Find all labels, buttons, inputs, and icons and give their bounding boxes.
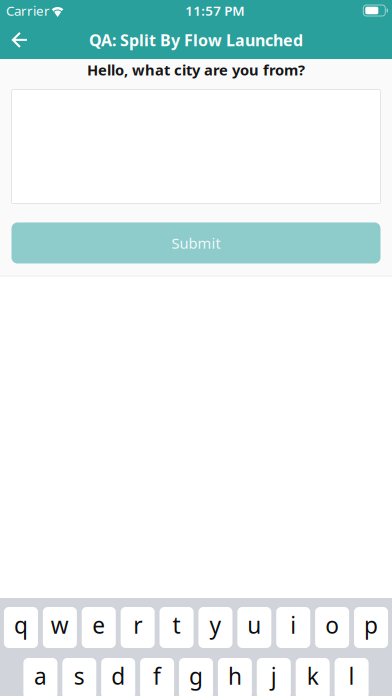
staticText: a bbox=[34, 661, 47, 691]
button[interactable]: Back bbox=[0, 21, 38, 59]
button[interactable]: w bbox=[43, 607, 77, 648]
staticText: w bbox=[51, 610, 69, 640]
staticText: j bbox=[271, 661, 277, 691]
staticText: q bbox=[14, 610, 28, 640]
button[interactable]: k bbox=[296, 658, 330, 696]
staticText: y bbox=[209, 610, 221, 640]
staticText: QA: Split By Flow Launched bbox=[89, 29, 303, 51]
button[interactable]: j bbox=[257, 658, 291, 696]
staticText: k bbox=[307, 661, 319, 691]
button[interactable]: f bbox=[140, 658, 174, 696]
button[interactable]: d bbox=[101, 658, 135, 696]
staticText: d bbox=[111, 661, 125, 691]
button[interactable]: h bbox=[218, 658, 252, 696]
button[interactable]: g bbox=[179, 658, 213, 696]
staticText: f bbox=[153, 661, 161, 691]
staticText: Hello, what city are you from? bbox=[87, 60, 305, 79]
staticText: s bbox=[74, 661, 85, 691]
button[interactable]: r bbox=[121, 607, 155, 648]
button[interactable]: t bbox=[159, 607, 193, 648]
staticText: p bbox=[364, 610, 378, 640]
staticText: t bbox=[172, 610, 180, 640]
staticText: Carrier bbox=[6, 2, 50, 19]
staticText: g bbox=[189, 661, 203, 691]
staticText: r bbox=[133, 610, 142, 640]
button[interactable]: e bbox=[82, 607, 116, 648]
staticText: Submit bbox=[171, 233, 220, 253]
staticText: 11:57 PM bbox=[185, 2, 244, 19]
button[interactable]: a bbox=[23, 658, 57, 696]
button[interactable]: l bbox=[335, 658, 369, 696]
button[interactable]: q bbox=[4, 607, 38, 648]
button[interactable]: s bbox=[62, 658, 96, 696]
staticText: o bbox=[325, 610, 339, 640]
staticText: e bbox=[92, 610, 105, 640]
button[interactable]: Submit bbox=[11, 222, 380, 263]
staticText: u bbox=[247, 610, 261, 640]
button[interactable]: p bbox=[354, 607, 388, 648]
button[interactable]: y bbox=[198, 607, 232, 648]
button[interactable]: u bbox=[237, 607, 271, 648]
staticText: h bbox=[228, 661, 242, 691]
button[interactable]: i bbox=[276, 607, 310, 648]
staticText: l bbox=[349, 661, 355, 691]
button[interactable]: o bbox=[315, 607, 349, 648]
staticText: i bbox=[290, 610, 296, 640]
